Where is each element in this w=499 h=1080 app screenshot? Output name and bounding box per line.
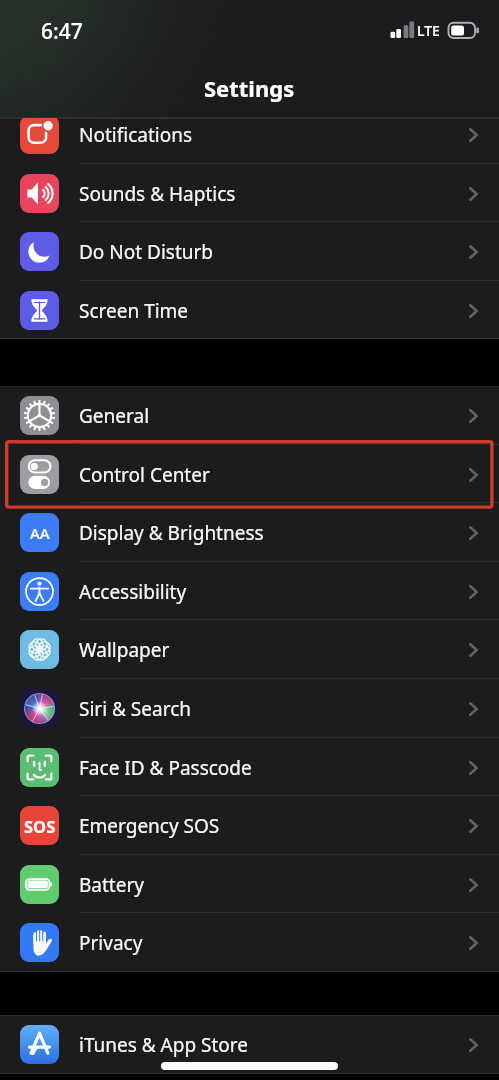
button[interactable]: Privacy	[0, 913, 499, 972]
button[interactable]: Screen Time	[0, 281, 499, 340]
staticText: 6:47	[41, 17, 83, 46]
button[interactable]: Accessibility	[0, 562, 499, 621]
staticText: SOS	[24, 815, 56, 837]
staticText: LTE	[417, 21, 440, 40]
button[interactable]: Battery	[0, 855, 499, 914]
button[interactable]: Siri & Search	[0, 679, 499, 738]
staticText: Sounds & Haptics	[79, 181, 236, 207]
staticText: Siri & Search	[79, 696, 192, 722]
staticText: Notifications	[79, 122, 193, 148]
staticText: Wallpaper	[79, 637, 170, 663]
staticText: Face ID & Passcode	[79, 755, 252, 781]
staticText: Settings	[204, 73, 295, 103]
button[interactable]: General	[0, 386, 499, 445]
button[interactable]: iTunes & App Store	[0, 1015, 499, 1074]
staticText: Accessibility	[79, 579, 187, 605]
staticText: iTunes & App Store	[79, 1032, 249, 1058]
button[interactable]: Wallpaper	[0, 620, 499, 679]
staticText: Privacy	[79, 930, 143, 956]
staticText: Do Not Disturb	[79, 239, 214, 265]
staticText: Display & Brightness	[79, 520, 264, 546]
staticText: Control Center	[79, 462, 210, 488]
staticText: Screen Time	[79, 298, 189, 324]
button[interactable]: SOS	[0, 796, 499, 855]
staticText: General	[79, 403, 150, 429]
button[interactable]: Control Center	[0, 445, 499, 504]
staticText: Battery	[79, 872, 144, 898]
button[interactable]: Sounds & Haptics	[0, 164, 499, 223]
staticText: AA	[30, 523, 50, 543]
staticText: Emergency SOS	[79, 813, 220, 839]
button[interactable]: AA	[0, 503, 499, 562]
button[interactable]: Do Not Disturb	[0, 222, 499, 281]
button[interactable]: Face ID & Passcode	[0, 738, 499, 797]
button[interactable]: Notifications	[0, 105, 499, 164]
